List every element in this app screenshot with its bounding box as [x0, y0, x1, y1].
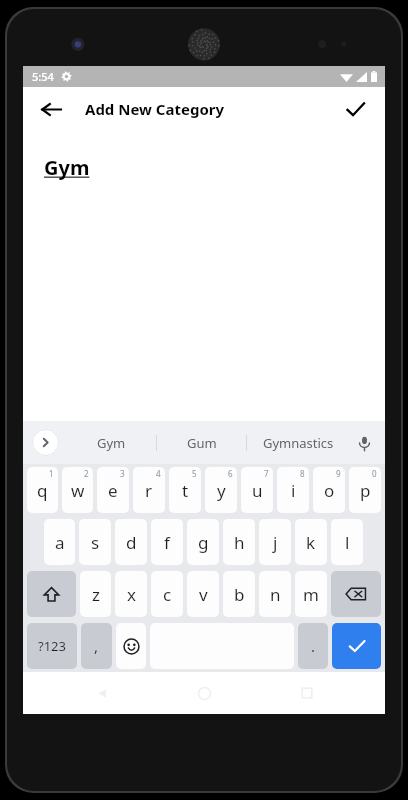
staticText: 2	[84, 468, 89, 479]
button[interactable]: t	[169, 467, 201, 513]
button[interactable]: r	[133, 467, 165, 513]
button[interactable]: ?123	[27, 623, 77, 669]
staticText: t	[182, 479, 189, 502]
button[interactable]: Back	[31, 89, 71, 129]
staticText: 0	[372, 468, 377, 479]
staticText: b	[234, 583, 245, 606]
staticText: ,	[94, 636, 99, 656]
button[interactable]: f	[151, 519, 183, 565]
staticText: r	[145, 479, 153, 502]
button[interactable]: u	[241, 467, 273, 513]
button[interactable]: y	[205, 467, 237, 513]
staticText: Add New Category	[85, 99, 225, 119]
staticText: i	[291, 479, 296, 502]
staticText: y	[217, 479, 226, 502]
staticText: 5	[192, 468, 197, 479]
button[interactable]: s	[79, 519, 111, 565]
staticText: z	[92, 583, 100, 606]
staticText: 5:54	[32, 69, 54, 84]
button[interactable]: x	[115, 571, 147, 617]
button[interactable]: e	[97, 467, 129, 513]
staticText: 6	[228, 468, 233, 479]
staticText: n	[270, 583, 281, 606]
staticText: k	[306, 531, 316, 554]
button[interactable]: w	[62, 467, 93, 513]
staticText: 1	[49, 468, 54, 479]
staticText: 8	[300, 468, 305, 479]
staticText: 7	[264, 468, 269, 479]
staticText: m	[303, 583, 319, 606]
staticText: o	[324, 479, 335, 502]
button[interactable]: q	[27, 467, 58, 513]
button[interactable]: c	[151, 571, 183, 617]
button[interactable]: ,	[81, 623, 112, 669]
button[interactable]: o	[313, 467, 345, 513]
button[interactable]: Save	[335, 89, 375, 129]
staticText: Gum	[187, 434, 217, 452]
staticText: u	[252, 479, 263, 502]
button[interactable]: m	[295, 571, 327, 617]
button[interactable]: v	[187, 571, 219, 617]
staticText: j	[273, 531, 278, 554]
staticText: w	[71, 479, 85, 502]
staticText: a	[55, 531, 65, 554]
button[interactable]: Voice input	[349, 428, 379, 458]
button[interactable]: a	[44, 519, 75, 565]
staticText: d	[126, 531, 137, 554]
staticText: q	[37, 479, 48, 502]
button[interactable]: More suggestions	[32, 429, 59, 456]
button[interactable]: j	[259, 519, 291, 565]
button[interactable]: b	[223, 571, 255, 617]
staticText: Gym	[97, 434, 126, 452]
button[interactable]: Shift	[27, 571, 76, 617]
button[interactable]: i	[277, 467, 309, 513]
staticText: ?123	[38, 637, 66, 655]
staticText: 4	[156, 468, 161, 479]
button[interactable]: Gym	[67, 421, 156, 464]
staticText: 9	[336, 468, 341, 479]
button[interactable]: l	[331, 519, 363, 565]
button[interactable]: Enter	[332, 623, 381, 669]
button[interactable]: Emoji	[116, 623, 146, 669]
button[interactable]: Gymnastics	[247, 421, 349, 464]
staticText: c	[163, 583, 172, 606]
button[interactable]: h	[223, 519, 255, 565]
staticText: f	[164, 531, 170, 554]
button[interactable]: .	[298, 623, 328, 669]
button[interactable]: d	[115, 519, 147, 565]
button[interactable]: g	[187, 519, 219, 565]
staticText: Gym	[44, 154, 90, 181]
staticText: h	[234, 531, 245, 554]
staticText: v	[199, 583, 208, 606]
button[interactable]: n	[259, 571, 291, 617]
staticText: 3	[120, 468, 125, 479]
staticText: s	[91, 531, 100, 554]
button[interactable]: Backspace	[331, 571, 381, 617]
staticText: x	[127, 583, 136, 606]
staticText: e	[108, 479, 118, 502]
button[interactable]: p	[349, 467, 381, 513]
staticText: .	[311, 636, 316, 656]
staticText: Gymnastics	[263, 434, 334, 452]
button[interactable]: k	[295, 519, 327, 565]
button[interactable]: Gum	[157, 421, 246, 464]
staticText: l	[345, 531, 350, 554]
button[interactable]: z	[80, 571, 111, 617]
staticText: p	[360, 479, 371, 502]
staticText: g	[198, 531, 209, 554]
